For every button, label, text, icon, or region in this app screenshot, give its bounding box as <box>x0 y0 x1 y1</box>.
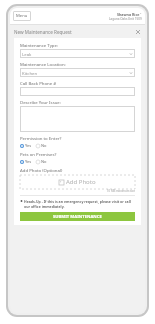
button[interactable]: Yes <box>20 143 32 148</box>
staticText: Kitchen <box>22 70 38 76</box>
button[interactable]: Yes <box>20 159 32 164</box>
staticText: Pets on Premises? <box>20 151 57 157</box>
staticText: Leak <box>22 51 32 57</box>
staticText: No <box>41 143 47 148</box>
button[interactable] <box>20 106 135 132</box>
staticText: Yes <box>25 143 32 148</box>
button[interactable]: Add Photo <box>20 175 135 189</box>
staticText: Maintenance Type: <box>20 42 59 48</box>
button[interactable]: Close <box>134 28 141 35</box>
staticText: Yes <box>25 159 32 164</box>
button[interactable]: Shawna Rice ˅ <box>109 12 142 21</box>
staticText: Describe Your Issue: <box>20 99 61 105</box>
staticText: Call Back Phone # <box>20 80 56 86</box>
staticText: Heads-Up - If this is an emergency reque… <box>24 199 135 209</box>
staticText: Maintenance Location: <box>20 61 66 67</box>
button[interactable]: No <box>36 143 47 148</box>
button[interactable]: SUBMIT MAINTENANCE <box>20 212 135 221</box>
button[interactable]: No <box>36 159 47 164</box>
staticText: Permission to Enter? <box>20 135 62 141</box>
staticText: SUBMIT MAINTENANCE <box>53 214 102 220</box>
button[interactable]: Menu <box>13 11 31 21</box>
staticText: Shawna Rice ˅ <box>117 12 142 17</box>
staticText: 10 MB maximum size <box>20 189 135 193</box>
button[interactable]: Kitchen <box>20 68 135 77</box>
staticText: No <box>41 159 47 164</box>
button[interactable] <box>20 87 135 96</box>
staticText: New Maintenance Request <box>14 29 72 35</box>
staticText: Add Photo (Optional) <box>20 167 63 173</box>
staticText: Menu <box>16 13 28 19</box>
button[interactable]: Leak <box>20 49 135 58</box>
staticText: Laguna Oaks Unit 1509 <box>109 17 142 21</box>
staticText: Add Photo <box>66 178 96 186</box>
